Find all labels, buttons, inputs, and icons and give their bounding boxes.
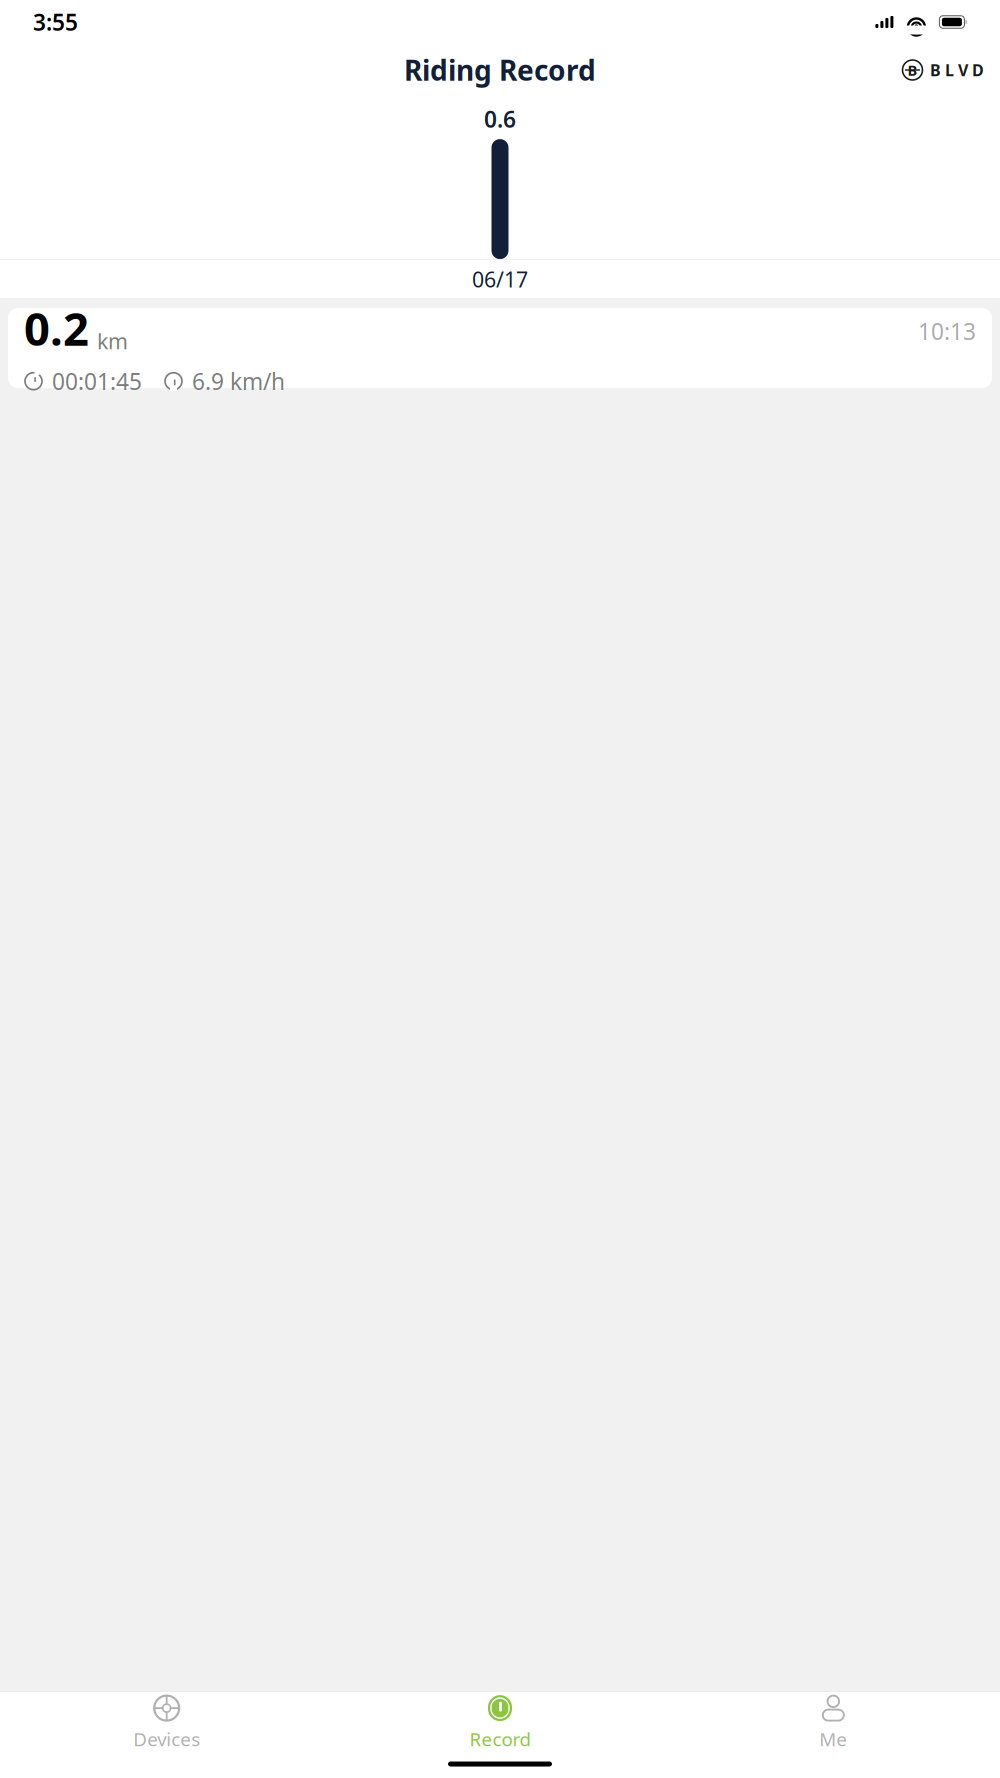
staticText: Riding Record [404, 51, 596, 89]
staticText: Devices [133, 1727, 200, 1751]
button[interactable]: Record [333, 1687, 667, 1755]
staticText: B [907, 60, 917, 80]
staticText: Me [819, 1727, 847, 1751]
staticText: Record [469, 1727, 530, 1751]
staticText: km [97, 327, 128, 355]
staticText: 6.9 km/h [192, 366, 285, 396]
staticText: 00:01:45 [52, 366, 142, 396]
staticText: B L V D [930, 59, 984, 81]
staticText: 06/17 [472, 265, 528, 293]
staticText: 0.6 [484, 104, 516, 134]
button[interactable]: Devices [0, 1687, 333, 1755]
staticText: 10:13 [918, 316, 976, 346]
button[interactable]: Me [667, 1687, 1000, 1755]
staticText: 3:55 [33, 7, 78, 37]
staticText: 0.2 [24, 298, 89, 358]
button[interactable]: 0.2 [8, 308, 992, 388]
button[interactable]: BLVD [902, 59, 984, 81]
